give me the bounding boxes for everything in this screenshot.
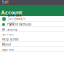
button[interactable]: Jane Doe	[0, 16, 64, 22]
staticText: Help centre	[2, 38, 19, 41]
button[interactable]: About	[0, 42, 64, 47]
staticText: SUPPORT	[2, 33, 15, 36]
button[interactable]: Security	[0, 27, 64, 32]
staticText: Account	[1, 9, 22, 16]
staticText: Sign out	[2, 48, 14, 51]
button[interactable]: Payment methods	[0, 22, 64, 27]
button[interactable]: Help centre	[0, 37, 64, 42]
staticText: 9:41	[2, 1, 9, 4]
staticText: Jane Doe	[8, 14, 22, 17]
staticText: About	[2, 43, 11, 46]
staticText: jane@example.com	[8, 17, 26, 24]
button[interactable]: Sign out	[0, 47, 64, 52]
staticText: Payment methods	[7, 23, 31, 26]
staticText: Security	[7, 28, 17, 31]
